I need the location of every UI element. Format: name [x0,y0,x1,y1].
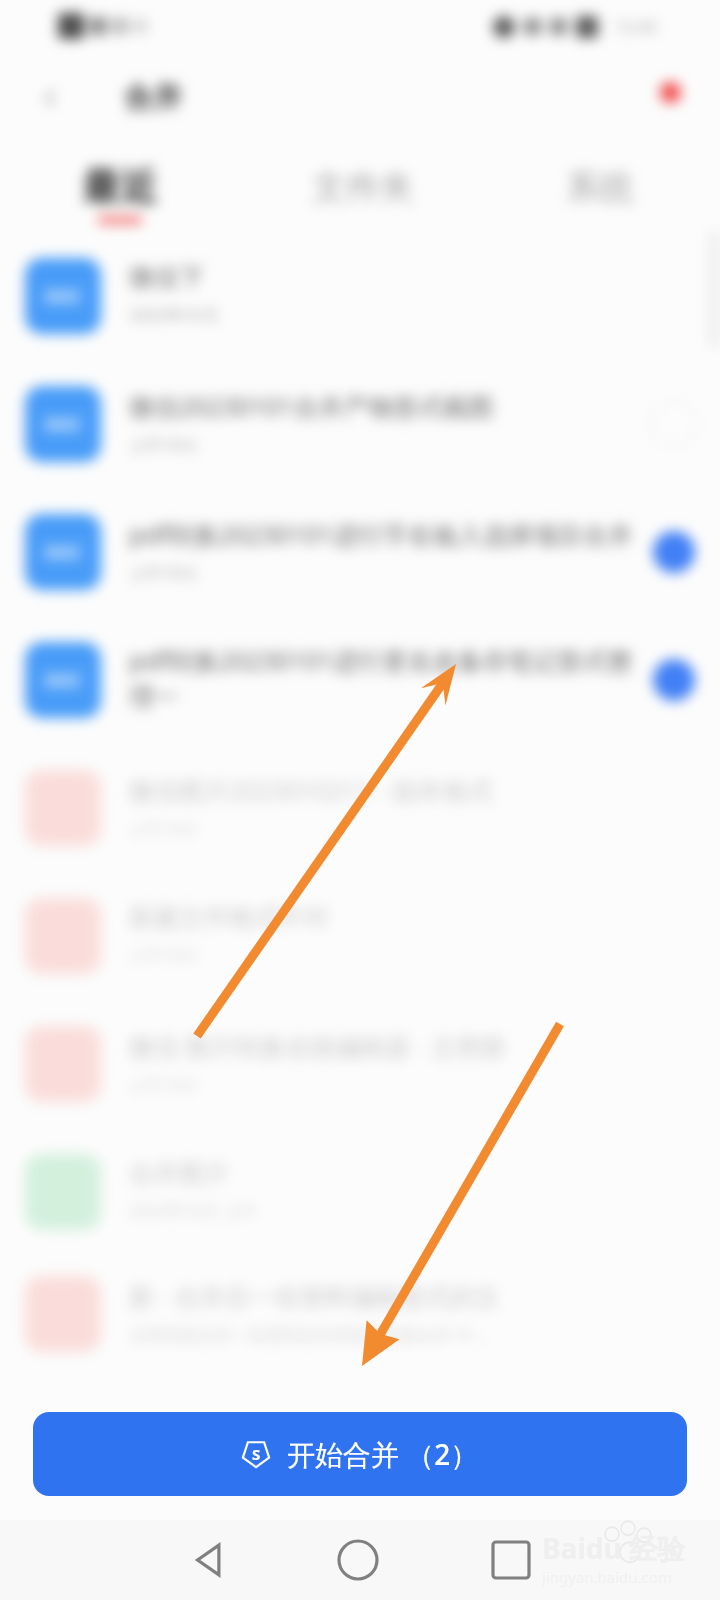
staticText: 开始合并 （2） [287,1435,479,1473]
button[interactable]: Back [26,74,74,122]
staticText: DOC [45,541,82,564]
button[interactable]: DOC [0,360,720,488]
button[interactable]: 微信图片2023010211 - 副本格式 [0,744,720,872]
staticText: 文档转换合并一份资料的文档形式转换合并 中... [129,1323,488,1346]
button[interactable]: 合并图片 [0,1128,720,1256]
staticText: 微信20230101合并产物形式截图 [129,389,494,423]
button[interactable]: Back [177,1528,241,1592]
button[interactable]: DOC [0,488,720,616]
button[interactable]: 新建文件格式中对 [0,872,720,1000]
staticText: 合并图片 [129,1158,229,1189]
staticText: DOC [45,413,82,436]
button[interactable]: 系统 [520,155,680,232]
staticText: 新 - 合并后一份资料编辑形式的文 [129,1279,501,1313]
staticText: 最近 [82,163,158,211]
button[interactable]: 文件夹 [283,155,443,232]
button[interactable]: Recents [479,1528,543,1592]
staticText: 上午10:2 [129,561,197,584]
staticText: 文件夹 [312,166,414,209]
button[interactable]: 微信 图片转换在线编辑器 - 文档形 [0,1000,720,1128]
staticText: DOC [45,285,82,308]
staticText: DOC [45,669,82,692]
button[interactable]: 新 - 合并后一份资料编辑形式的文 [0,1256,720,1372]
button[interactable]: S [33,1412,687,1496]
button[interactable]: DOC [0,232,720,360]
staticText: 上午10:2 [129,433,197,456]
button[interactable]: 最近 [40,155,200,232]
staticText: 2023年今天 [129,303,219,326]
staticText: pdf转换20230101进行更名改备存笔记形式整理一 [129,643,638,713]
staticText: 新建文件格式中对 [129,902,329,933]
staticText: 微信图片2023010211 - 副本格式 [129,773,494,807]
staticText: 合并 [124,79,182,116]
staticText: S [252,1444,261,1464]
button[interactable]: DOC [0,616,720,744]
staticText: 系统 [566,166,634,209]
button[interactable]: Notifications [640,76,696,132]
staticText: 微信下 [129,262,204,293]
staticText: 微信 图片转换在线编辑器 - 文档形 [129,1029,507,1063]
staticText: 12:45 [614,15,658,38]
staticText: pdf转换20230101进行字名输入选择项目合并 [129,517,633,551]
button[interactable]: Home [326,1528,390,1592]
staticText: Baidu 经验 [542,1529,685,1567]
